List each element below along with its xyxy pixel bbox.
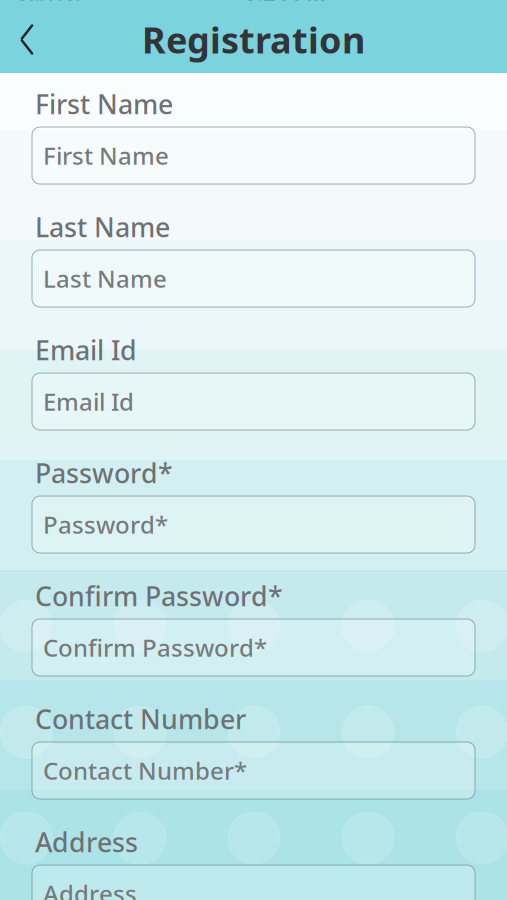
- button[interactable]: Password*: [32, 496, 475, 553]
- staticText: Email Id: [35, 332, 137, 368]
- button[interactable]: Back: [0, 10, 54, 68]
- staticText: Contact Number: [35, 701, 246, 737]
- button[interactable]: Contact Number*: [32, 742, 475, 799]
- staticText: Password*: [43, 509, 168, 540]
- staticText: Contact Number*: [43, 755, 247, 786]
- button[interactable]: Email Id: [32, 373, 475, 430]
- staticText: Registration: [142, 16, 365, 63]
- staticText: 3:24 PM: [245, 0, 326, 6]
- button[interactable]: Last Name: [32, 250, 475, 307]
- staticText: Address: [43, 878, 137, 900]
- button[interactable]: Confirm Password*: [32, 619, 475, 676]
- staticText: Confirm Password*: [43, 632, 267, 663]
- staticText: Password*: [35, 455, 173, 491]
- staticText: Confirm Password*: [35, 578, 283, 614]
- button[interactable]: Address: [32, 865, 475, 900]
- staticText: Last Name: [35, 209, 170, 245]
- staticText: Carrier: [14, 0, 84, 6]
- staticText: First Name: [35, 86, 173, 122]
- button[interactable]: First Name: [32, 127, 475, 184]
- staticText: Last Name: [43, 263, 167, 294]
- staticText: First Name: [43, 140, 169, 171]
- staticText: Email Id: [43, 386, 134, 417]
- staticText: Address: [35, 824, 138, 860]
